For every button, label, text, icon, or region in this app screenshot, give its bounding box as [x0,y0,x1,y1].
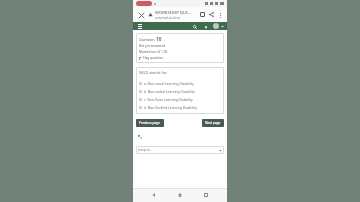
staticText: Previous page [139,121,161,125]
staticText: Jump to... [138,148,153,152]
staticText: a. Non-visual Learning Disability [144,81,194,85]
button[interactable]: Jump to... [136,146,224,154]
button[interactable]: Search [191,23,198,30]
button[interactable]: Menu [136,23,143,30]
staticText: c. Non-Voice Learning Disability [144,97,193,101]
staticText: Flag question [143,56,164,60]
button[interactable]: d. Non-Verified Learning Disability [139,103,221,111]
button[interactable]: b. Non-verbal Learning Disability [139,87,221,95]
button[interactable]: Close [136,10,146,20]
staticText: universal.ac.uk.sn [155,16,181,20]
staticText: Question [139,37,156,42]
button[interactable]: Back [149,190,159,200]
staticText: Next page [205,121,221,125]
button[interactable]: Home [175,190,185,200]
staticText: WORKSHOP QUI… [155,10,192,16]
button[interactable]: c. Non-Voice Learning Disability [139,95,221,103]
button[interactable]: More options [216,11,224,19]
staticText: 10 [156,36,162,42]
button[interactable]: a. Non-visual Learning Disability [139,79,221,87]
button[interactable]: Flag question [139,56,164,60]
button[interactable]: Previous page [136,119,164,127]
staticText: b. Non-verbal Learning Disability [144,89,195,93]
button[interactable]: Recent apps [201,190,211,200]
button[interactable]: Next page [202,119,224,127]
button[interactable]: Account [213,23,219,29]
staticText: d. Non-Verified Learning Disability [144,105,197,109]
button[interactable]: Share [207,10,216,19]
staticText: Not yet answered [139,44,166,48]
staticText: NVLD stands for: [139,70,168,75]
button[interactable]: Notifications [202,23,209,30]
button[interactable]: Quiz navigation [136,133,144,141]
staticText: Marked out of 1.00 [139,50,168,54]
button[interactable]: Tabs [198,10,207,19]
